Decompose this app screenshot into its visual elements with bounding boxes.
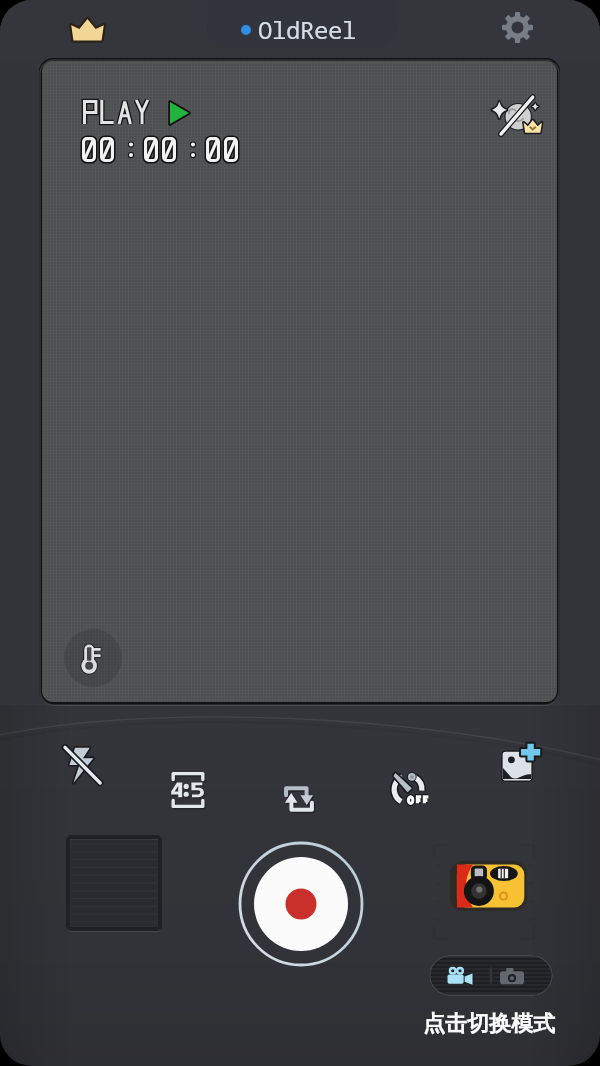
button[interactable]: Timer off [384, 762, 438, 816]
button[interactable]: Record [238, 841, 364, 967]
button[interactable]: Camera model [444, 855, 532, 917]
staticText: OldReel [258, 13, 356, 46]
button[interactable]: Switch mode [429, 955, 553, 996]
button[interactable]: Flash off [56, 738, 110, 792]
button[interactable]: Aspect ratio 4:5 [161, 763, 215, 817]
staticText: 点击切换模式 [423, 1010, 555, 1038]
button[interactable]: Settings [495, 5, 539, 49]
button[interactable]: Switch camera [272, 772, 326, 826]
button[interactable]: Add photo [494, 736, 548, 790]
button[interactable]: OldReel [207, 0, 397, 48]
button[interactable]: Gallery [66, 836, 162, 932]
button[interactable]: Premium [65, 8, 109, 52]
button[interactable]: Auto enhance off [488, 89, 550, 151]
button[interactable]: Temperature [64, 629, 122, 687]
